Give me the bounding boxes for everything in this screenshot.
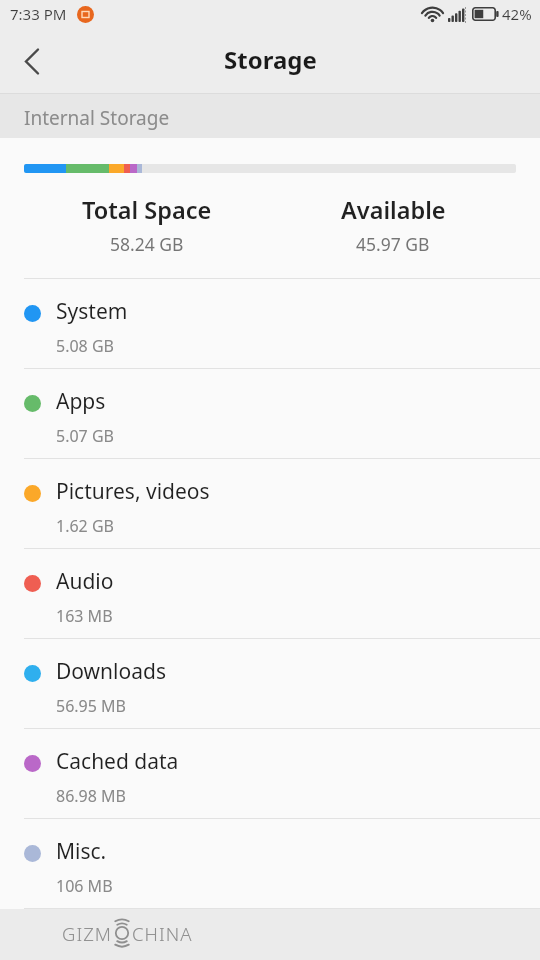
- button[interactable]: [10, 39, 54, 83]
- staticText: Storage: [224, 43, 317, 76]
- staticText: 106 MB: [56, 875, 113, 897]
- staticText: Pictures, videos: [56, 477, 210, 506]
- staticText: Audio: [56, 567, 114, 596]
- staticText: 7:33 PM: [10, 4, 67, 24]
- staticText: Internal Storage: [24, 105, 170, 131]
- staticText: System: [56, 297, 128, 326]
- staticText: Cached data: [56, 747, 179, 776]
- button[interactable]: Pictures, videos: [0, 459, 540, 548]
- button[interactable]: Downloads: [0, 639, 540, 728]
- staticText: Misc.: [56, 837, 107, 866]
- staticText: 86.98 MB: [56, 785, 126, 807]
- staticText: 45.97 GB: [356, 232, 430, 256]
- staticText: Apps: [56, 387, 106, 416]
- staticText: Available: [341, 194, 446, 226]
- button[interactable]: Audio: [0, 549, 540, 638]
- button[interactable]: Apps: [0, 369, 540, 458]
- staticText: Downloads: [56, 657, 166, 686]
- staticText: 5.07 GB: [56, 425, 114, 447]
- staticText: 163 MB: [56, 605, 113, 627]
- button[interactable]: System: [0, 279, 540, 368]
- staticText: 1.62 GB: [56, 515, 114, 537]
- staticText: 56.95 MB: [56, 695, 126, 717]
- button[interactable]: Cached data: [0, 729, 540, 818]
- button[interactable]: Misc.: [0, 819, 540, 908]
- staticText: Total Space: [82, 194, 212, 226]
- staticText: GIZM: [62, 921, 112, 946]
- staticText: 42%: [502, 4, 532, 24]
- staticText: 5.08 GB: [56, 335, 114, 357]
- staticText: 58.24 GB: [110, 232, 184, 256]
- staticText: CHINA: [132, 921, 193, 946]
